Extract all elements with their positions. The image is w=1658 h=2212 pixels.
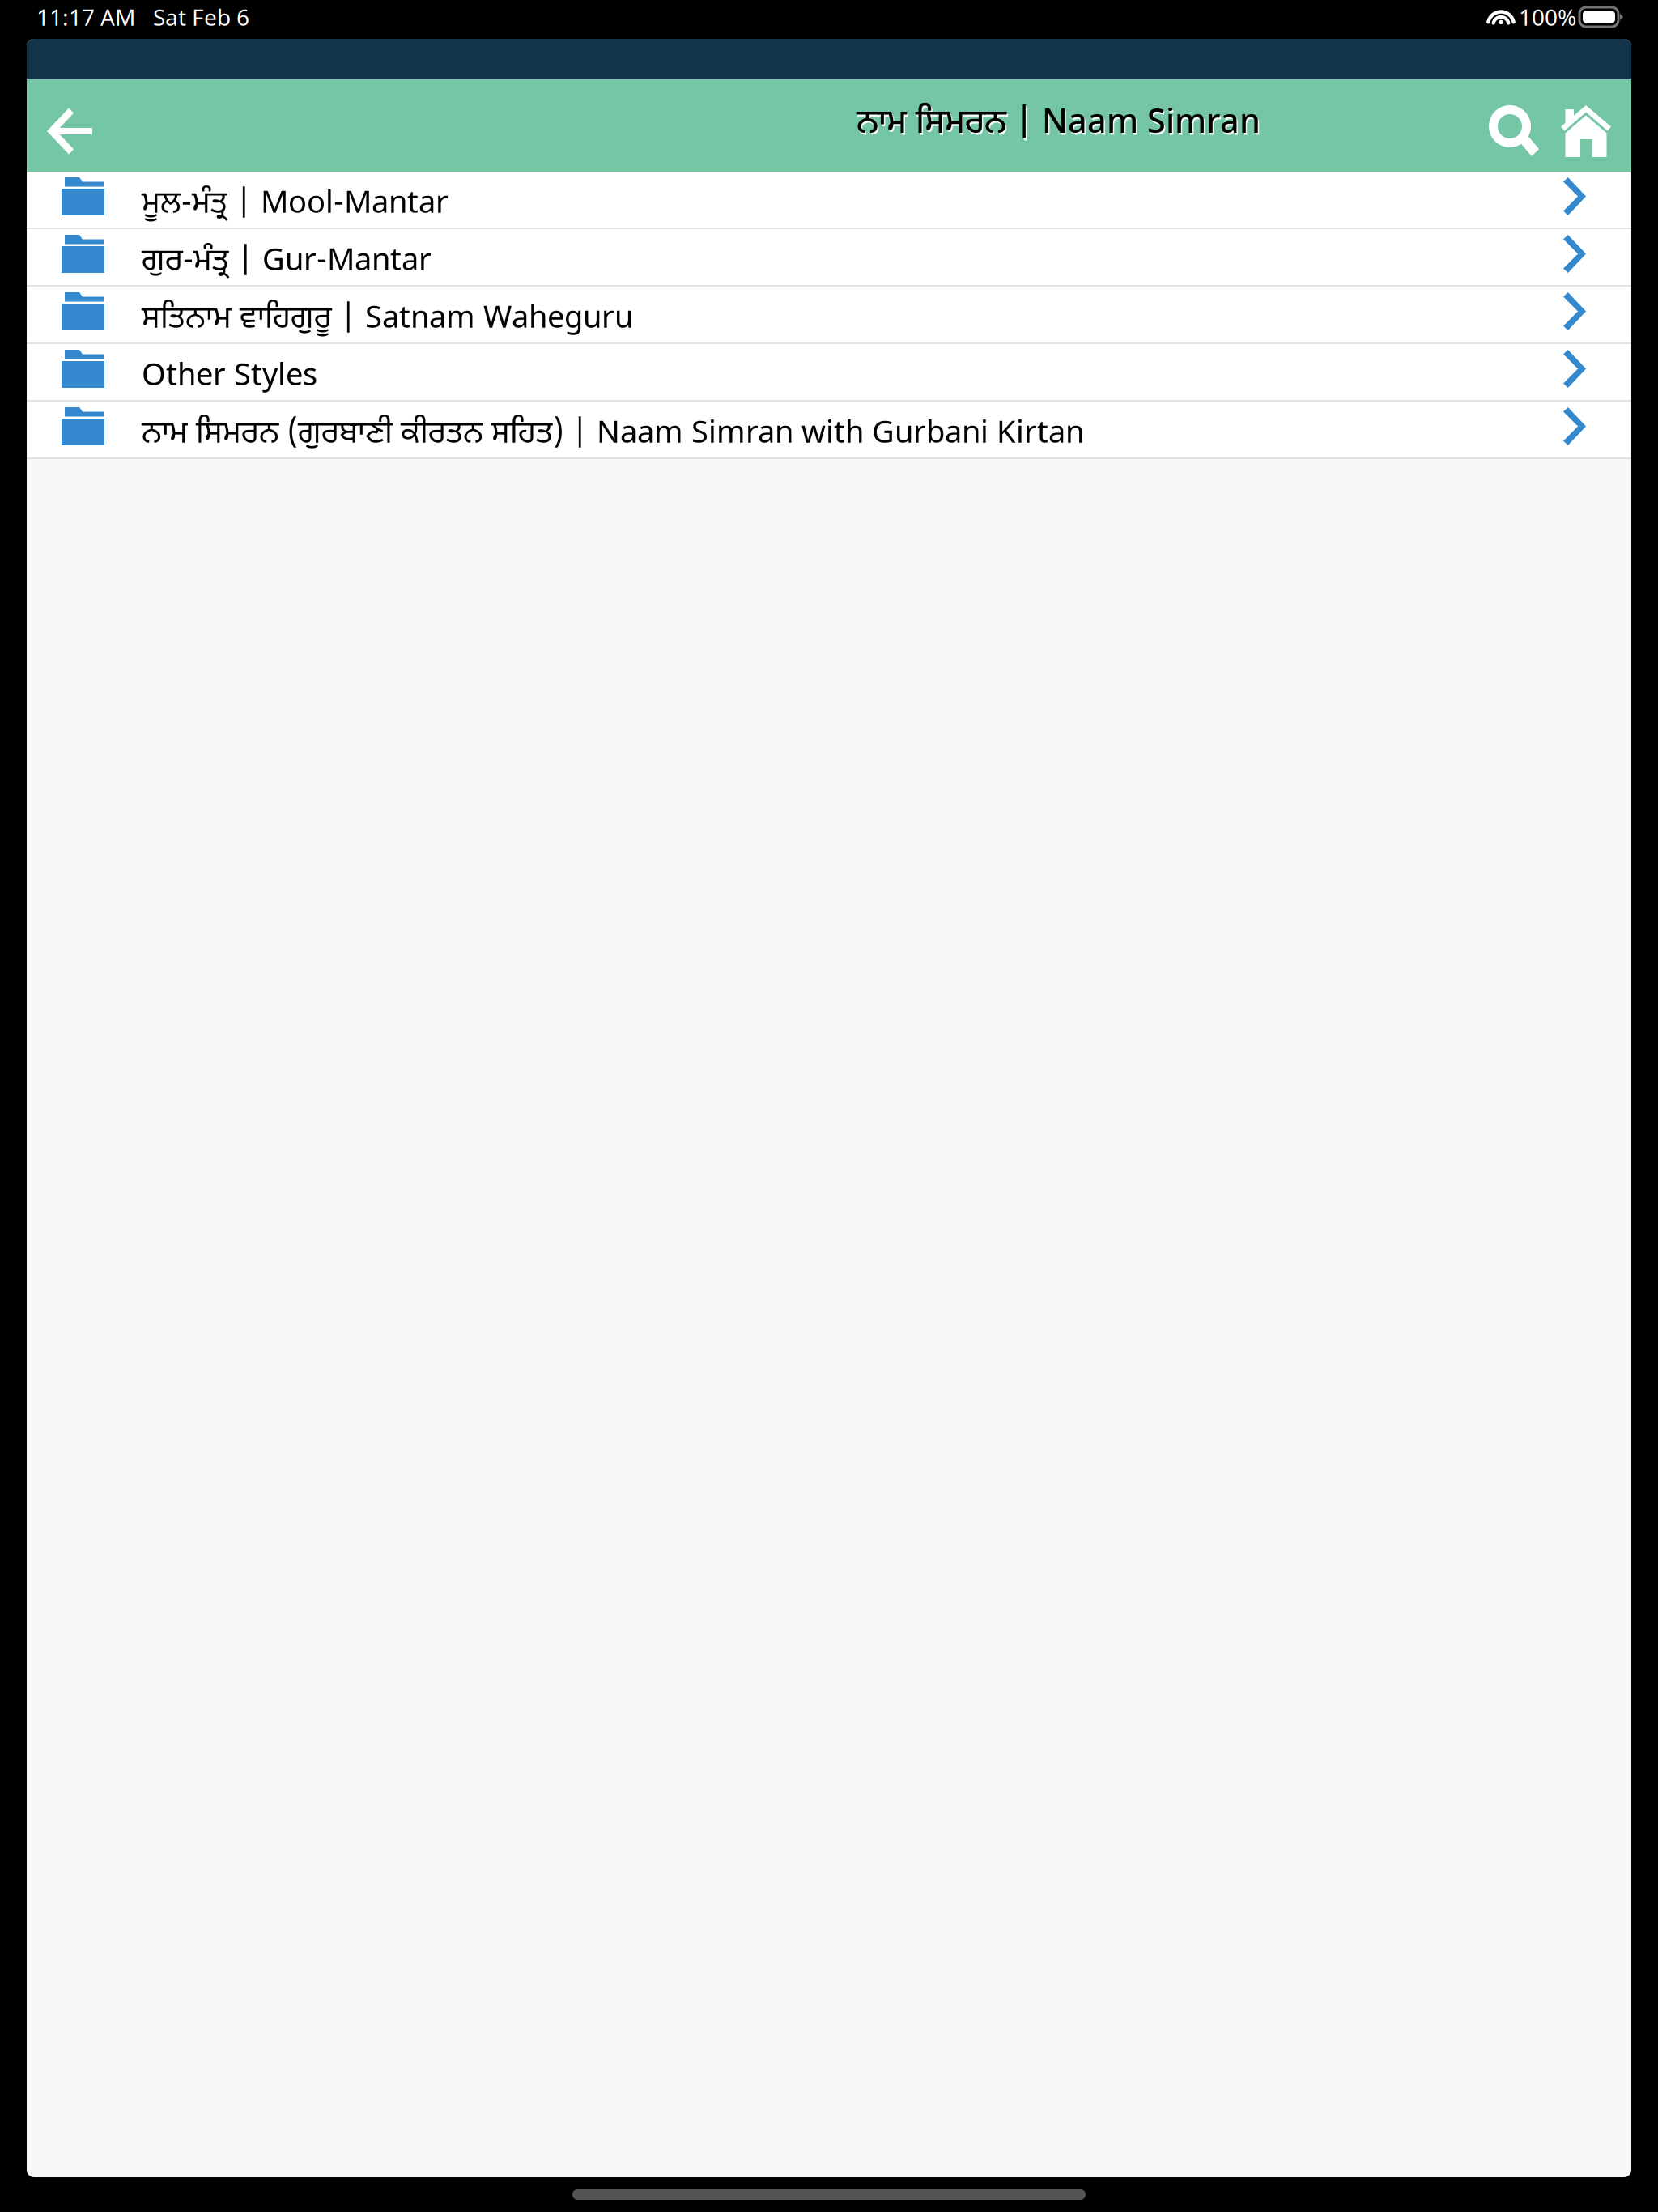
staticText: 11:17 AM <box>36 2 135 32</box>
staticText: ਗੁਰ-ਮੰਤ੍ਰ | Gur-Mantar <box>142 243 432 283</box>
staticText: ਮੂਲ-ਮੰਤ੍ਰ | Mool-Mantar <box>142 185 449 225</box>
button[interactable]: ਮੂਲ-ਮੰਤ੍ਰ | Mool-Mantar <box>27 172 1631 229</box>
staticText: ਗੁਰ-ਮੰਤ੍ਰ | Gur-Mantar <box>143 245 433 285</box>
staticText: 100% <box>1519 2 1576 32</box>
button[interactable]: ਗੁਰ-ਮੰਤ੍ਰ | Gur-Mantar <box>27 229 1631 287</box>
staticText: Other Styles <box>142 358 317 398</box>
staticText: ਸਤਿਨਾਮ ਵਾਹਿਗੁਰੂ | Satnam Waheguru <box>142 300 633 340</box>
staticText: Sat Feb 6 <box>153 2 249 32</box>
button[interactable]: ਸਤਿਨਾਮ ਵਾਹਿਗੁਰੂ | Satnam Waheguru <box>27 287 1631 344</box>
button[interactable]: Search <box>1490 79 1560 172</box>
button[interactable]: Back <box>29 79 110 172</box>
staticText: ਨਾਮ ਸਿਮਰਨ | Naam Simran <box>858 105 1262 149</box>
staticText: ਨਾਮ ਸਿਮਰਨ (ਗੁਰਬਾਣੀ ਕੀਰਤਨ ਸਹਿਤ) | Naam Si… <box>142 415 1084 455</box>
button[interactable]: Home <box>1560 79 1631 172</box>
staticText: ਨਾਮ ਸਿਮਰਨ | Naam Simran <box>857 103 1261 147</box>
staticText: Other Styles <box>143 360 319 400</box>
button[interactable]: ਨਾਮ ਸਿਮਰਨ (ਗੁਰਬਾਣੀ ਕੀਰਤਨ ਸਹਿਤ) | Naam Si… <box>27 402 1631 459</box>
staticText: ਸਤਿਨਾਮ ਵਾਹਿਗੁਰੂ | Satnam Waheguru <box>143 302 634 342</box>
staticText: ਨਾਮ ਸਿਮਰਨ (ਗੁਰਬਾਣੀ ਕੀਰਤਨ ਸਹਿਤ) | Naam Si… <box>143 417 1085 457</box>
staticText: ਮੂਲ-ਮੰਤ੍ਰ | Mool-Mantar <box>143 187 450 227</box>
button[interactable]: Other Styles <box>27 344 1631 402</box>
